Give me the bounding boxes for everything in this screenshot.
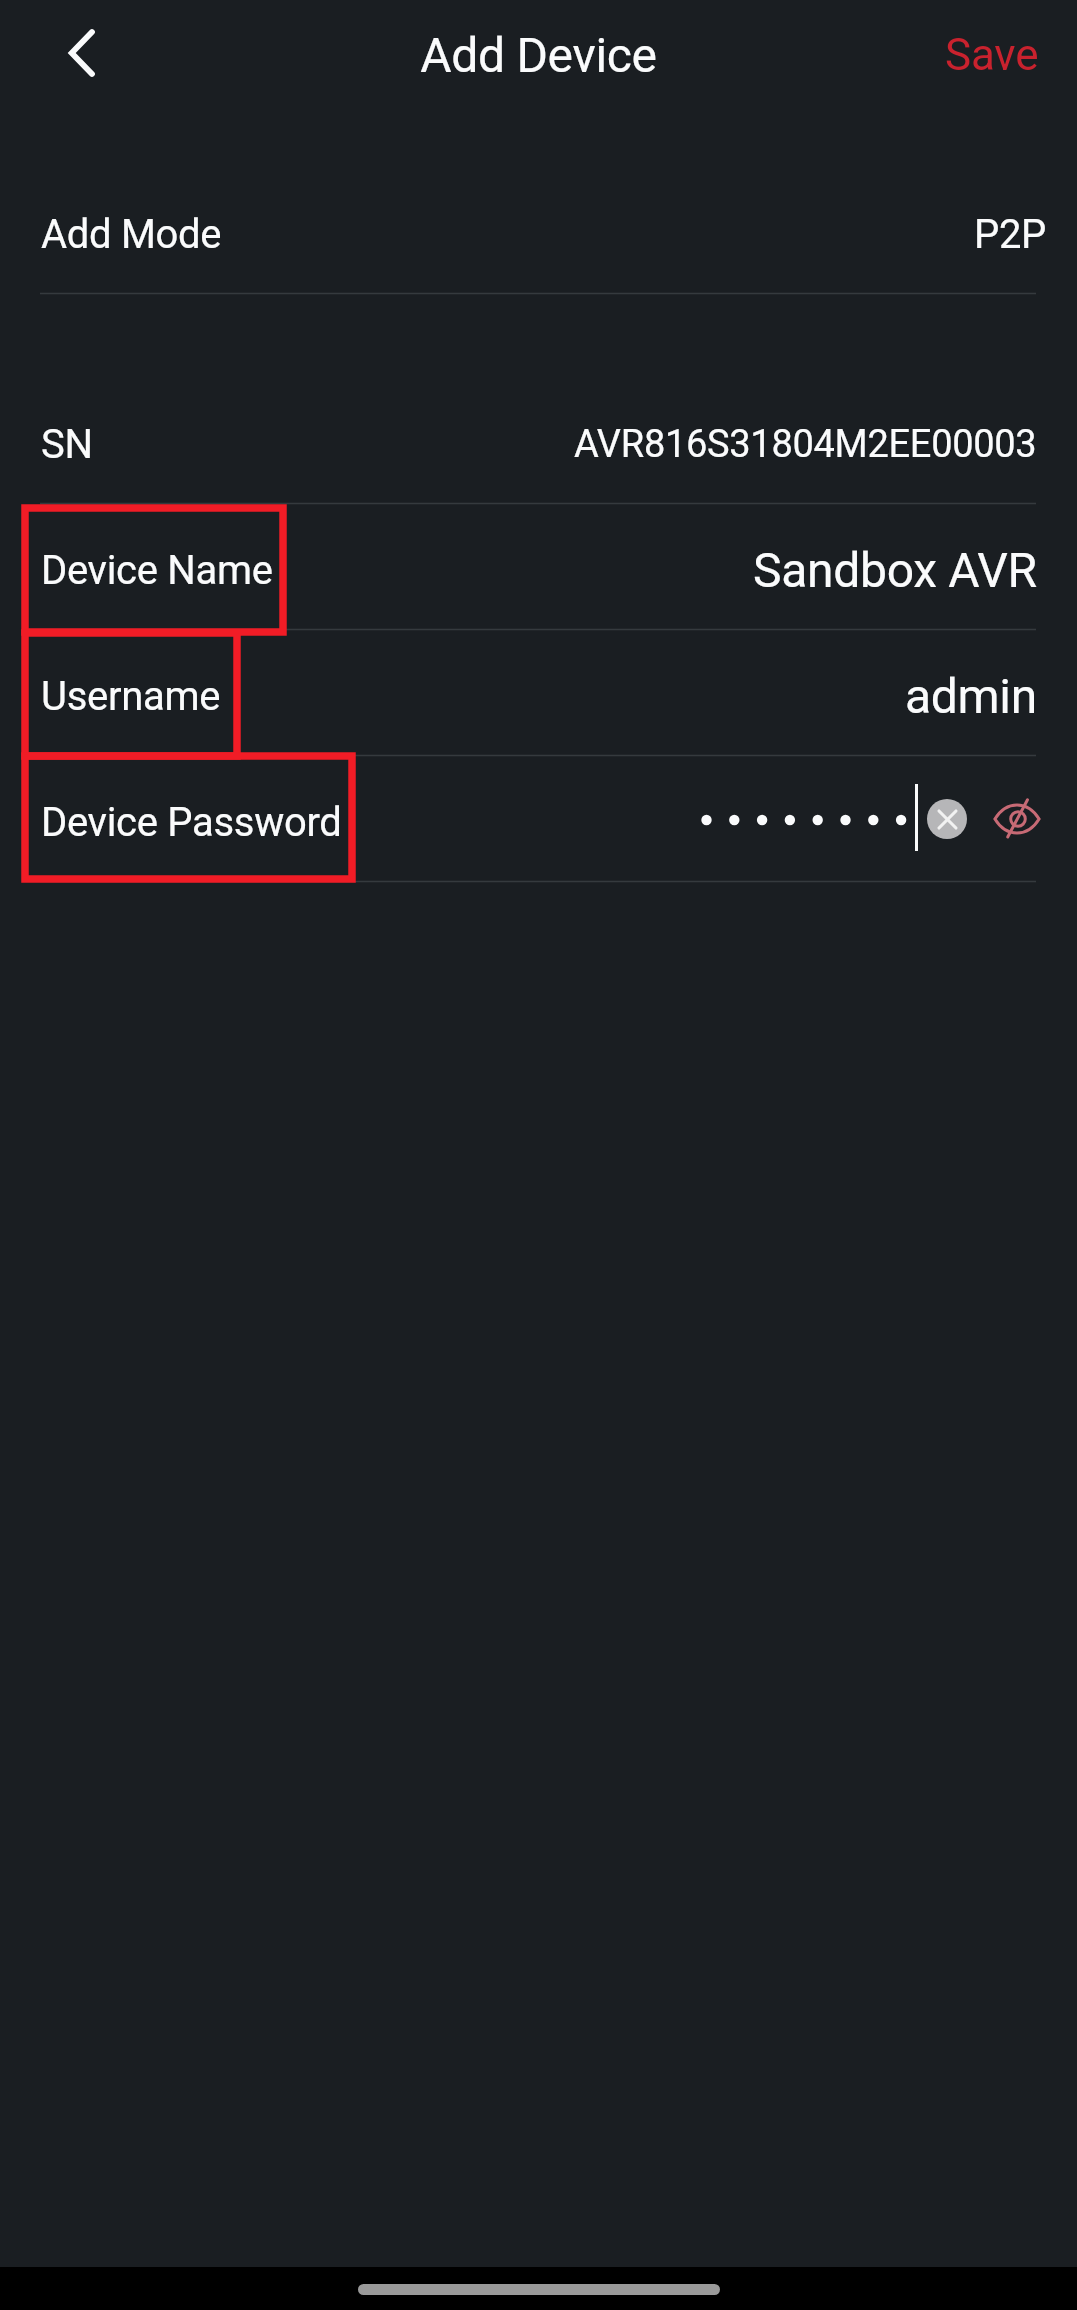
button[interactable]: Save: [928, 14, 1055, 96]
staticText: Username: [41, 673, 221, 720]
staticText: AVR816S31804M2EE00003: [574, 422, 1037, 467]
button[interactable]: Back: [48, 19, 116, 87]
button[interactable]: Device Name: [0, 504, 1077, 630]
staticText: Device Name: [41, 547, 273, 594]
staticText: Add Device: [0, 27, 1077, 83]
staticText: SN: [41, 421, 93, 468]
button[interactable]: Show password: [990, 792, 1044, 846]
staticText: Sandbox AVR: [753, 542, 1037, 598]
button[interactable]: SN: [0, 378, 1077, 504]
button[interactable]: Username: [0, 630, 1077, 756]
button[interactable]: Add Mode: [0, 168, 1077, 294]
button[interactable]: Device Password: [0, 756, 1077, 882]
staticText: Add Mode: [41, 211, 222, 258]
staticText: Device Password: [41, 799, 342, 846]
button[interactable]: Clear password: [920, 792, 974, 846]
staticText: P2P: [974, 211, 1047, 258]
staticText: Save: [945, 29, 1039, 81]
staticText: admin: [905, 668, 1037, 724]
